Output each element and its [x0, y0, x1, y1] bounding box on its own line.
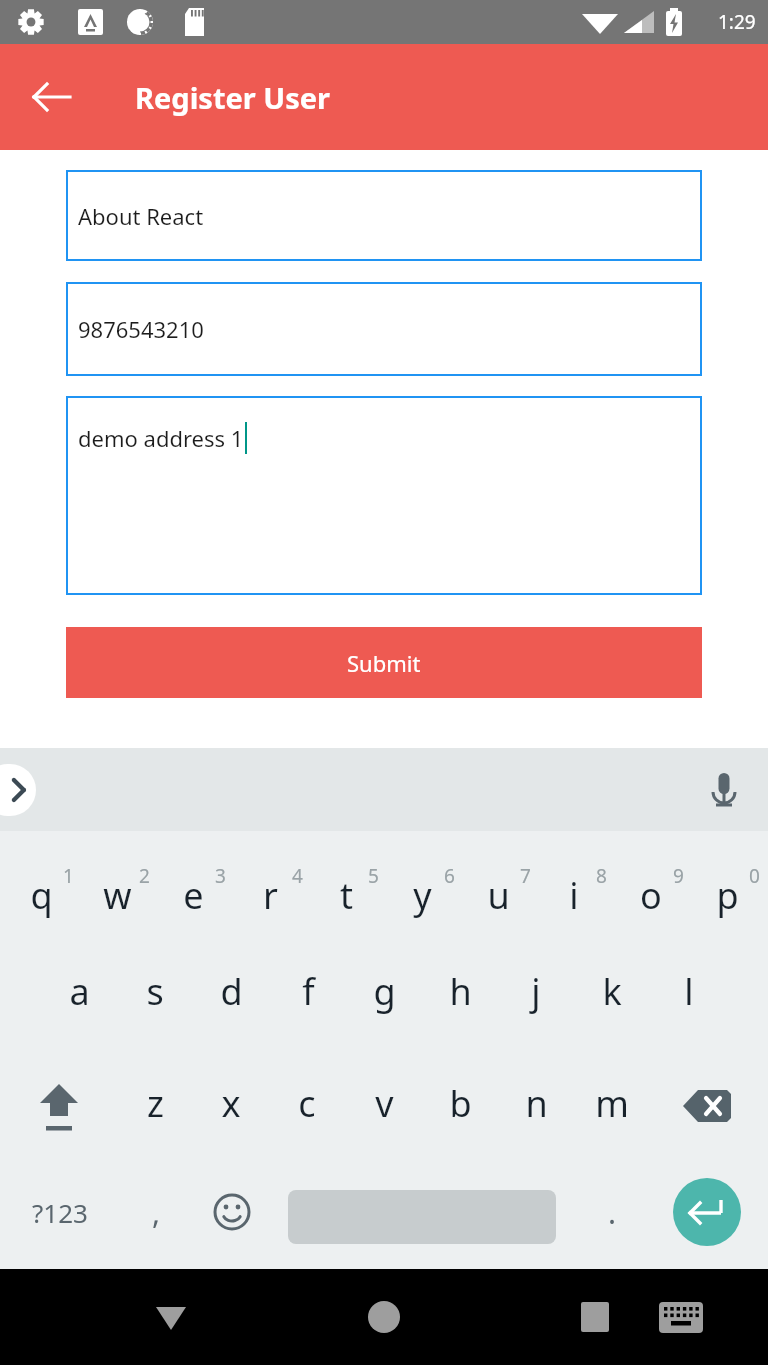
button[interactable]: j [498, 939, 574, 1047]
button[interactable]: x [193, 1051, 269, 1159]
button[interactable]: w [79, 831, 155, 939]
staticText: demo address 1 [78, 423, 244, 453]
staticText: m [595, 1079, 629, 1128]
staticText: c [298, 1079, 316, 1128]
staticText: n [525, 1079, 548, 1128]
staticText: Register User [135, 78, 331, 117]
button[interactable]: Switch keyboard [652, 1269, 768, 1365]
button[interactable]: t [308, 831, 384, 939]
button[interactable]: 1 [30, 831, 106, 939]
button[interactable]: ?123 [14, 1177, 106, 1247]
button[interactable]: 9 [640, 831, 716, 939]
button[interactable]: Back [24, 69, 80, 125]
button[interactable]: Backspace [668, 1069, 746, 1143]
staticText: w [103, 871, 132, 920]
button[interactable]: f [270, 939, 346, 1047]
button[interactable]: 7 [487, 831, 563, 939]
staticText: q [30, 871, 53, 920]
button[interactable]: Expand suggestions [0, 764, 36, 816]
staticText: y [413, 871, 432, 920]
button[interactable]: demo address 1 [66, 396, 702, 595]
button[interactable]: c [269, 1051, 345, 1159]
button[interactable]: p [689, 831, 765, 939]
button[interactable]: d [193, 939, 269, 1047]
button[interactable]: q [3, 831, 79, 939]
staticText: 9876543210 [78, 314, 204, 344]
button[interactable]: Recents [567, 1269, 768, 1365]
button[interactable]: 0 [716, 831, 768, 939]
staticText: 9 [673, 863, 684, 889]
staticText: d [220, 967, 243, 1016]
button[interactable]: 3 [182, 831, 258, 939]
button[interactable]: 4 [259, 831, 335, 939]
button[interactable]: o [613, 831, 689, 939]
button[interactable]: 8 [563, 831, 639, 939]
button[interactable]: Back [141, 1269, 768, 1365]
button[interactable]: i [536, 831, 612, 939]
staticText: i [569, 871, 579, 920]
button[interactable]: About React [66, 170, 702, 261]
staticText: r [263, 871, 278, 920]
staticText: , [152, 1192, 161, 1233]
button[interactable]: r [232, 831, 308, 939]
staticText: j [531, 967, 541, 1016]
button[interactable]: Submit [66, 627, 702, 698]
staticText: 5 [368, 863, 379, 889]
staticText: 6 [444, 863, 455, 889]
button[interactable]: Home [354, 1269, 768, 1365]
staticText: 8 [596, 863, 607, 889]
button[interactable]: v [346, 1051, 422, 1159]
button[interactable]: h [422, 939, 498, 1047]
staticText: f [302, 967, 315, 1016]
staticText: x [221, 1079, 241, 1128]
button[interactable]: a [41, 939, 117, 1047]
staticText: a [69, 967, 90, 1016]
button[interactable]: s [117, 939, 193, 1047]
button[interactable]: g [346, 939, 422, 1047]
staticText: ?123 [32, 1195, 88, 1230]
staticText: About React [78, 201, 204, 231]
button[interactable]: u [460, 831, 536, 939]
button[interactable]: n [498, 1051, 574, 1159]
staticText: 2 [139, 863, 150, 889]
button[interactable]: z [117, 1051, 193, 1159]
button[interactable]: Emoji [200, 1177, 264, 1247]
button[interactable]: 5 [335, 831, 411, 939]
staticText: . [608, 1192, 617, 1233]
button[interactable]: e [155, 831, 231, 939]
button[interactable]: l [651, 939, 727, 1047]
staticText: k [602, 967, 622, 1016]
button[interactable]: y [384, 831, 460, 939]
button[interactable]: 6 [411, 831, 487, 939]
button[interactable]: b [422, 1051, 498, 1159]
staticText: u [487, 871, 510, 920]
staticText: o [640, 871, 662, 920]
button[interactable]: , [124, 1177, 188, 1247]
staticText: z [147, 1079, 164, 1128]
staticText: Submit [347, 648, 421, 678]
staticText: 7 [520, 863, 531, 889]
button[interactable]: Voice input [700, 766, 748, 814]
staticText: g [373, 967, 396, 1016]
staticText: 3 [215, 863, 226, 889]
button[interactable]: Enter [673, 1178, 741, 1246]
staticText: 1:29 [718, 9, 756, 35]
staticText: p [716, 871, 739, 920]
staticText: v [375, 1079, 394, 1128]
button[interactable]: m [574, 1051, 650, 1159]
staticText: l [684, 967, 694, 1016]
staticText: t [340, 871, 353, 920]
button[interactable]: 2 [106, 831, 182, 939]
staticText: 0 [749, 863, 760, 889]
button[interactable]: . [580, 1177, 644, 1247]
button[interactable]: 9876543210 [66, 282, 702, 376]
button[interactable]: Shift [20, 1069, 98, 1143]
staticText: 1 [63, 863, 74, 889]
staticText: s [146, 967, 164, 1016]
staticText: b [449, 1079, 472, 1128]
staticText: e [183, 871, 204, 920]
staticText: h [449, 967, 472, 1016]
button[interactable]: k [574, 939, 650, 1047]
staticText: 4 [292, 863, 303, 889]
